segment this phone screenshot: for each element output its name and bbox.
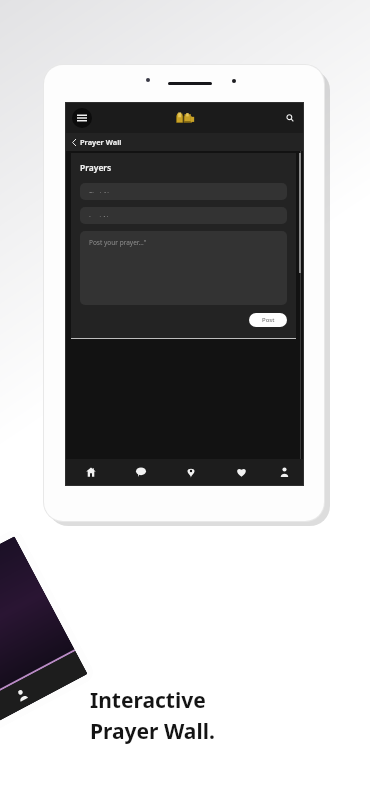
button[interactable]: Prayer Wall <box>66 133 303 151</box>
staticText: Post <box>262 316 275 324</box>
button[interactable]: Home <box>66 459 116 485</box>
button[interactable]: Profile <box>266 459 303 485</box>
staticText: First Name <box>89 190 123 193</box>
button[interactable]: Post <box>249 313 287 327</box>
staticText: Last Name <box>89 214 122 217</box>
button[interactable]: Favorites <box>216 459 266 485</box>
button[interactable]: Search <box>282 110 298 126</box>
staticText: Post your prayer..." <box>89 238 147 247</box>
button[interactable]: Menu <box>72 108 92 128</box>
button[interactable]: Locations <box>166 459 216 485</box>
staticText: Prayers <box>80 162 112 174</box>
staticText: Prayer Wall. <box>90 717 215 746</box>
button[interactable]: Post your prayer..." <box>80 231 287 305</box>
staticText: Interactive <box>90 686 206 715</box>
staticText: Prayer Wall <box>80 137 122 147</box>
button[interactable]: Messages <box>116 459 166 485</box>
